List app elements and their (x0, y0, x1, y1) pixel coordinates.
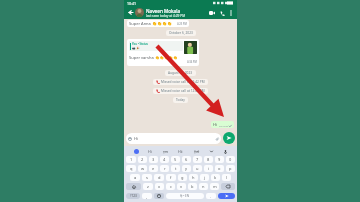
button[interactable]: r (160, 165, 169, 172)
button[interactable]: Backspace (221, 183, 235, 190)
button[interactable]: m (210, 183, 219, 190)
staticText: q (130, 166, 133, 171)
button[interactable]: Hii (177, 149, 184, 154)
staticText: 📷 🎉 (132, 46, 140, 50)
button[interactable]: You • Status (129, 41, 197, 64)
button[interactable]: हि • EN (166, 193, 204, 199)
staticText: ?123 (130, 194, 137, 198)
staticText: k (214, 175, 217, 180)
button[interactable]: Hi (147, 149, 153, 154)
staticText: a (134, 175, 137, 180)
button[interactable]: Missed voice call (156, 80, 205, 84)
staticText: 5 (174, 157, 177, 162)
button[interactable]: q (126, 165, 136, 172)
staticText: Hi (148, 149, 152, 154)
button[interactable]: 4 (160, 156, 169, 163)
button[interactable]: z (143, 183, 153, 190)
staticText: l (226, 175, 228, 180)
button[interactable]: Video call (207, 8, 217, 18)
button[interactable]: Send (218, 193, 235, 199)
button[interactable]: l (222, 174, 231, 181)
button[interactable]: Hi (128, 133, 219, 144)
staticText: c (170, 184, 172, 189)
staticText: h (192, 175, 195, 180)
button[interactable]: 9 (215, 156, 224, 163)
button[interactable]: Call (217, 8, 227, 18)
button[interactable]: b (188, 183, 197, 190)
staticText: s (146, 175, 148, 180)
staticText: g (181, 175, 184, 180)
staticText: . (210, 194, 212, 199)
button[interactable]: Missed voice call (156, 89, 205, 93)
button[interactable]: c (166, 183, 175, 190)
button[interactable]: y (182, 165, 191, 172)
staticText: b (191, 184, 194, 189)
button[interactable]: p (226, 165, 235, 172)
staticText: e (152, 166, 155, 171)
button[interactable]: e (149, 165, 158, 172)
button[interactable]: 3 (149, 156, 158, 163)
staticText: r (164, 166, 166, 171)
button[interactable]: Naveen Mokala (146, 8, 207, 18)
staticText: 4:25 PM (177, 22, 187, 26)
staticText: o (218, 166, 221, 171)
button[interactable]: Super Anna (129, 21, 187, 26)
button[interactable]: 5 (171, 156, 180, 163)
button[interactable]: u (193, 165, 202, 172)
button[interactable]: w (138, 165, 147, 172)
staticText: j (204, 175, 206, 180)
staticText: 6 (185, 157, 188, 162)
button[interactable]: 1 (126, 156, 136, 163)
button[interactable]: o (215, 165, 224, 172)
button[interactable]: x (155, 183, 164, 190)
staticText: , (146, 194, 148, 199)
button[interactable]: 7 (193, 156, 202, 163)
staticText: 10:41 (127, 1, 136, 6)
staticText: v (180, 184, 183, 189)
staticText: Super Anna (129, 21, 151, 26)
staticText: t (175, 166, 177, 171)
staticText: 👏👏👏👏👏 (155, 56, 178, 60)
button[interactable]: Voice input (223, 149, 228, 154)
button[interactable]: g (178, 174, 187, 181)
staticText: 1 (130, 157, 133, 162)
button[interactable]: Expand (209, 149, 214, 154)
staticText: 7 (196, 157, 199, 162)
button[interactable]: j (200, 174, 209, 181)
button[interactable]: n (199, 183, 208, 190)
button[interactable]: हैलो (193, 149, 201, 154)
staticText: z (147, 184, 149, 189)
staticText: d (158, 175, 161, 180)
button[interactable]: h (189, 174, 198, 181)
button[interactable]: a (130, 174, 140, 181)
button[interactable]: हाय (162, 149, 169, 154)
button[interactable]: Back (126, 8, 135, 17)
staticText: You • Status (132, 42, 148, 46)
button[interactable]: t (171, 165, 180, 172)
button[interactable]: ?123 (126, 193, 140, 199)
button[interactable]: s (142, 174, 152, 181)
staticText: 0 (229, 157, 232, 162)
button[interactable]: Profile photo (135, 8, 144, 17)
staticText: हाय (163, 149, 168, 154)
button[interactable]: 6 (182, 156, 191, 163)
staticText: Hii (178, 149, 183, 154)
button[interactable]: Shift (126, 183, 141, 190)
button[interactable]: . (206, 193, 216, 199)
button[interactable]: Search (134, 149, 139, 154)
button[interactable]: k (211, 174, 220, 181)
button[interactable]: Send (223, 132, 235, 144)
staticText: last seen today at 4:29 PM (146, 14, 186, 18)
button[interactable]: 8 (204, 156, 213, 163)
staticText: i (208, 166, 210, 171)
button[interactable]: Hi (213, 122, 232, 127)
button[interactable]: 0 (226, 156, 235, 163)
button[interactable]: , (142, 193, 152, 199)
button[interactable]: v (177, 183, 186, 190)
button[interactable]: More options (227, 9, 235, 17)
button[interactable]: Emoji (154, 193, 164, 199)
button[interactable]: d (154, 174, 164, 181)
button[interactable]: i (204, 165, 213, 172)
button[interactable]: f (166, 174, 176, 181)
button[interactable]: 2 (138, 156, 147, 163)
